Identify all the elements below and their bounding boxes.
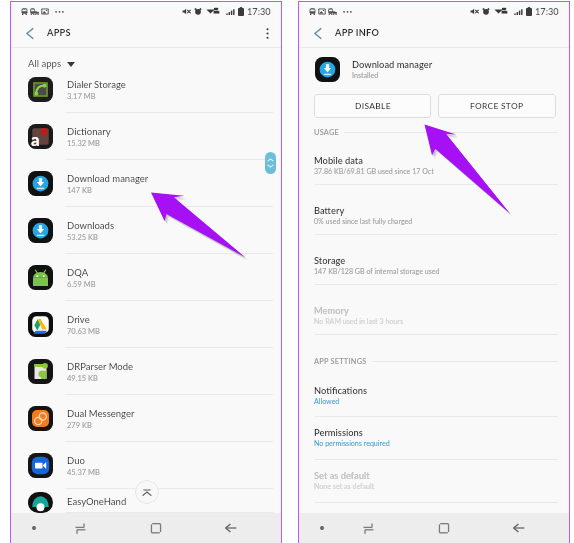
staticText: USAGE <box>314 128 339 137</box>
button[interactable]: Notification <box>310 513 334 543</box>
button[interactable]: EasyOneHand <box>11 489 281 513</box>
button[interactable]: All apps <box>11 58 281 70</box>
button[interactable]: Download manager <box>11 160 281 207</box>
staticText: Download manager <box>352 59 433 70</box>
button[interactable]: Dual Messenger <box>11 395 281 442</box>
staticText: Dialer Storage <box>67 79 126 90</box>
staticText: Download manager <box>67 173 149 184</box>
staticText: Dictionary <box>67 126 111 137</box>
button[interactable]: Memory <box>299 285 569 335</box>
button[interactable]: Download manager <box>315 54 569 85</box>
button[interactable]: Back <box>215 513 247 543</box>
button[interactable]: Navigate up <box>11 20 47 47</box>
staticText: APP INFO <box>335 27 380 38</box>
staticText: 45.37 MB <box>67 468 100 477</box>
staticText: APPS <box>47 27 71 38</box>
staticText: Drive <box>67 314 90 325</box>
button[interactable]: Storage <box>299 235 569 285</box>
button[interactable]: DQA <box>11 254 281 301</box>
button[interactable]: Home <box>140 513 172 543</box>
staticText: 70.63 MB <box>67 327 100 336</box>
staticText: FORCE STOP <box>470 101 524 111</box>
staticText: Downloads <box>67 220 115 231</box>
staticText: 279 KB <box>67 421 92 430</box>
button[interactable]: Battery <box>299 185 569 235</box>
button[interactable]: Back <box>503 513 535 543</box>
button[interactable]: Drive <box>11 301 281 348</box>
staticText: Battery <box>314 205 345 216</box>
staticText: 15.32 MB <box>67 139 100 148</box>
button[interactable]: Mobile data <box>299 142 569 185</box>
button[interactable]: More options <box>253 20 281 47</box>
button[interactable]: Home <box>428 513 460 543</box>
staticText: DRParser Mode <box>67 361 134 372</box>
button[interactable]: Notification <box>22 513 46 543</box>
button[interactable]: Permissions <box>299 417 569 460</box>
staticText: No RAM used in last 3 hours <box>314 317 403 326</box>
button[interactable]: Duo <box>11 442 281 489</box>
button[interactable]: DRParser Mode <box>11 348 281 395</box>
staticText: APP SETTINGS <box>314 357 367 366</box>
staticText: 6.59 MB <box>67 280 96 289</box>
button[interactable]: Navigate up <box>299 20 335 47</box>
button[interactable]: DISABLE <box>314 94 431 118</box>
staticText: DQA <box>67 267 89 278</box>
staticText: 17:30 <box>247 6 271 17</box>
staticText: No permissions required <box>314 439 390 448</box>
staticText: Allowed <box>314 397 340 406</box>
staticText: All apps <box>28 58 62 70</box>
staticText: Duo <box>67 455 85 466</box>
staticText: DISABLE <box>355 101 391 111</box>
staticText: Memory <box>314 305 349 316</box>
button[interactable]: Recents <box>64 513 96 543</box>
button[interactable]: Dialer Storage <box>11 66 281 113</box>
staticText: EasyOneHand <box>67 496 127 507</box>
staticText: 37.86 KB/69.81 GB used since 17 Oct <box>314 167 434 176</box>
button[interactable]: Scroll bar <box>265 152 276 174</box>
staticText: Installed <box>352 71 379 80</box>
staticText: Mobile data <box>314 155 363 166</box>
button[interactable]: Scroll to top <box>135 480 159 504</box>
staticText: None set as default <box>314 482 375 491</box>
button[interactable]: Notifications <box>299 371 569 417</box>
staticText: Storage <box>314 255 346 266</box>
button[interactable]: Recents <box>352 513 384 543</box>
staticText: Dual Messenger <box>67 408 135 419</box>
staticText: 0% used since last fully charged <box>314 217 413 226</box>
staticText: 147 KB <box>67 186 92 195</box>
staticText: Permissions <box>314 427 363 438</box>
staticText: 3.17 MB <box>67 92 96 101</box>
staticText: 17:30 <box>535 6 559 17</box>
button[interactable]: Downloads <box>11 207 281 254</box>
button[interactable]: FORCE STOP <box>438 94 556 118</box>
staticText: a <box>31 129 40 149</box>
button[interactable]: Set as default <box>299 460 569 503</box>
staticText: 49.15 KB <box>67 374 98 383</box>
staticText: 147 KB/128 GB of internal storage used <box>314 267 440 276</box>
button[interactable]: a <box>11 113 281 160</box>
staticText: 53.25 KB <box>67 233 98 242</box>
staticText: Set as default <box>314 470 370 481</box>
staticText: Notifications <box>314 385 368 396</box>
